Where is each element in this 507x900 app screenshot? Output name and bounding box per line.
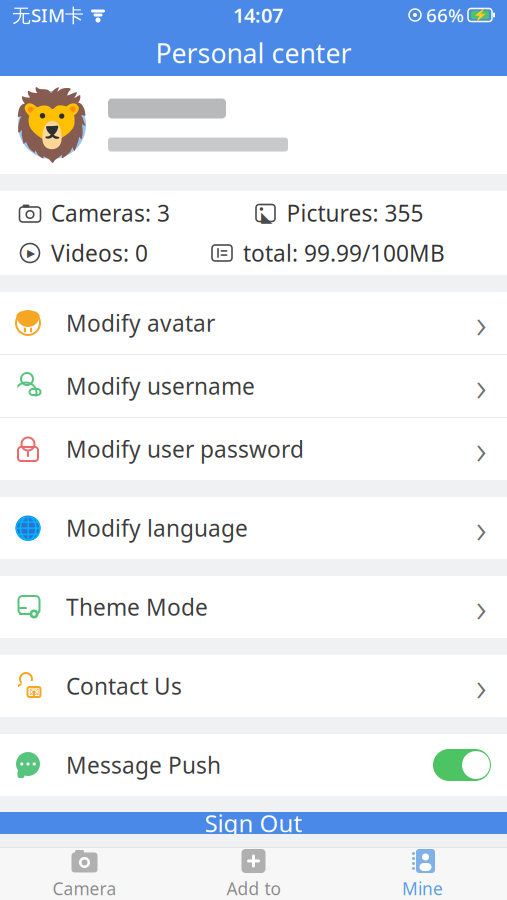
button[interactable]: Add to bbox=[169, 848, 338, 900]
button[interactable]: Modify avatar bbox=[0, 292, 507, 354]
staticText: Message Push bbox=[66, 750, 221, 780]
button[interactable]: 🦁 bbox=[0, 76, 507, 174]
button[interactable]: Sign Out bbox=[0, 800, 507, 846]
button[interactable]: Mine bbox=[338, 848, 507, 900]
staticText: Mine bbox=[402, 877, 443, 900]
staticText: › bbox=[476, 659, 487, 712]
staticText: Sign Out bbox=[204, 807, 302, 839]
staticText: total: 99.99/100MB bbox=[243, 238, 445, 268]
staticText: Add to bbox=[226, 877, 280, 900]
button[interactable]: 🌐 bbox=[0, 497, 507, 559]
staticText: › bbox=[476, 359, 487, 412]
staticText: Theme Mode bbox=[66, 592, 208, 622]
staticText: ✉ bbox=[29, 685, 39, 699]
staticText: Cameras: 3 bbox=[51, 198, 170, 228]
staticText: › bbox=[476, 422, 487, 475]
staticText: ⚡ bbox=[472, 8, 487, 22]
staticText: Contact Us bbox=[66, 671, 182, 701]
staticText: › bbox=[476, 296, 487, 349]
staticText: 无SIM卡 bbox=[12, 3, 84, 27]
staticText: Modify language bbox=[66, 513, 248, 543]
button[interactable]: ✉ bbox=[0, 655, 507, 717]
staticText: 66% bbox=[426, 3, 464, 27]
button[interactable]: Modify user password bbox=[0, 418, 507, 480]
button[interactable]: Modify username bbox=[0, 355, 507, 417]
staticText: 🦁 bbox=[9, 85, 95, 165]
staticText: Modify avatar bbox=[66, 308, 215, 338]
staticText: 🌐 bbox=[14, 515, 42, 541]
staticText: › bbox=[476, 580, 487, 633]
staticText: Camera bbox=[52, 877, 116, 900]
staticText: › bbox=[476, 501, 487, 554]
button[interactable]: Message Push bbox=[0, 734, 507, 796]
staticText: ◣ bbox=[261, 209, 272, 225]
button[interactable]: Theme Mode bbox=[0, 576, 507, 638]
staticText: Modify username bbox=[66, 371, 255, 401]
staticText: Pictures: 355 bbox=[286, 198, 423, 228]
staticText: Videos: 0 bbox=[51, 238, 148, 268]
staticText: Modify user password bbox=[66, 434, 304, 464]
staticText: 14:07 bbox=[233, 2, 283, 28]
button[interactable]: Camera bbox=[0, 848, 169, 900]
staticText: ▶ bbox=[27, 247, 35, 259]
staticText: Personal center bbox=[155, 35, 351, 71]
button[interactable]: Personal center bbox=[0, 30, 507, 76]
